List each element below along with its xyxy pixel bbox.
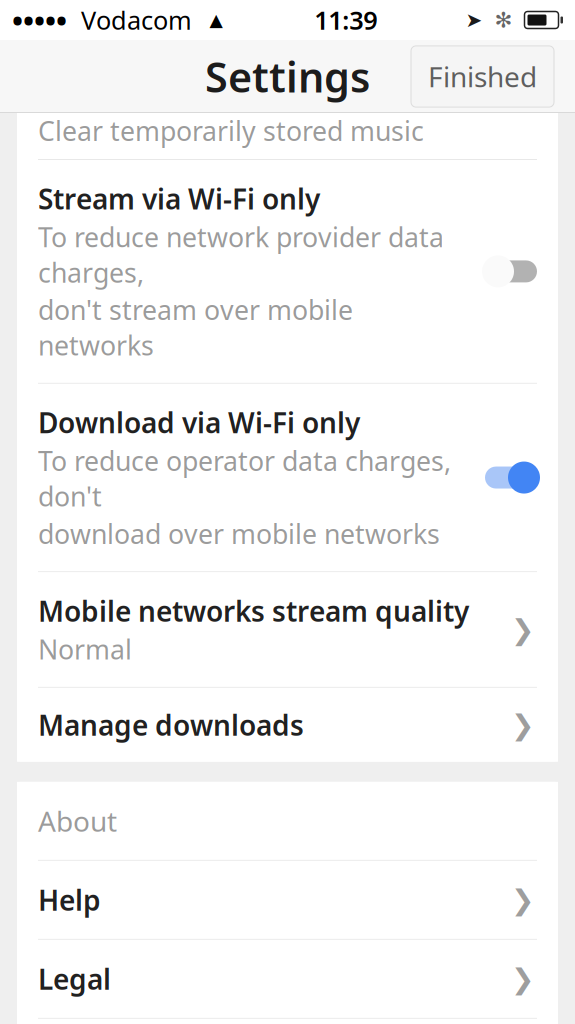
staticText: ❯	[511, 884, 534, 916]
staticText: ▲	[209, 10, 222, 30]
staticText: don't stream over mobile networks	[38, 292, 353, 363]
staticText: •••••	[12, 0, 67, 39]
staticText: To reduce network provider data charges,	[38, 219, 444, 290]
staticText: ➤	[465, 9, 482, 31]
staticText: ❯	[511, 709, 534, 741]
staticText: ❯	[511, 963, 534, 995]
button[interactable]: Help	[17, 861, 558, 939]
button[interactable]: Mobile networks stream quality	[17, 572, 558, 687]
staticText: ❯	[511, 614, 534, 645]
staticText: Clear temporarily stored music	[38, 113, 424, 148]
staticText: Stream via Wi-Fi only	[38, 180, 320, 217]
staticText: ✻	[494, 8, 512, 32]
staticText: Normal	[38, 631, 132, 667]
staticText: Legal	[38, 960, 111, 997]
staticText: Help	[38, 881, 101, 918]
staticText: About	[38, 802, 117, 839]
staticText: Settings	[205, 49, 370, 104]
staticText: download over mobile networks	[38, 516, 440, 551]
button[interactable]: Stream via Wi-Fi only	[17, 160, 558, 383]
staticText: Download via Wi-Fi only	[38, 404, 360, 441]
button[interactable]: Finished	[411, 46, 554, 107]
button[interactable]: Download via Wi-Fi only	[17, 384, 558, 571]
staticText: Mobile networks stream quality	[38, 592, 469, 629]
staticText: Finished	[428, 58, 537, 95]
staticText	[512, 5, 524, 35]
staticText: Vodacom	[67, 3, 206, 37]
staticText: Manage downloads	[38, 706, 304, 743]
button[interactable]: Legal	[17, 940, 558, 1018]
staticText: To reduce operator data charges, don't	[38, 443, 451, 514]
button[interactable]: Manage downloads	[17, 688, 558, 762]
staticText: 11:39	[314, 3, 377, 37]
